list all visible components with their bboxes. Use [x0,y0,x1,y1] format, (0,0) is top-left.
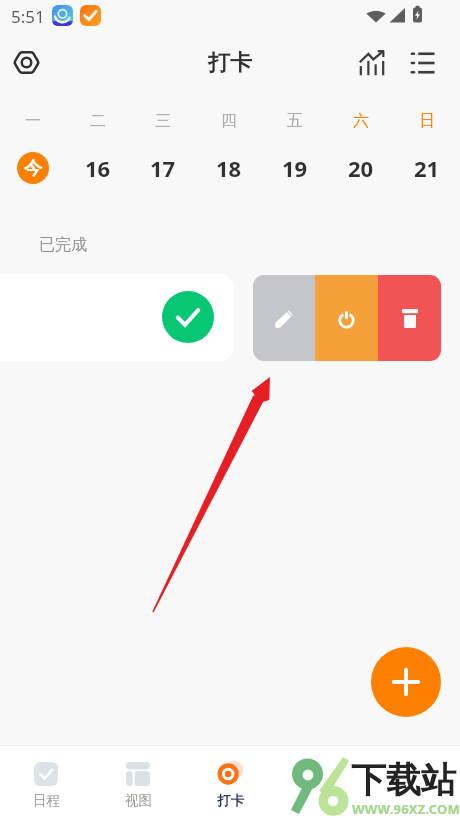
staticText: 三 [155,111,171,131]
staticText: 5:51 [11,5,45,28]
button[interactable]: Pause [315,275,378,361]
staticText: 四 [221,111,237,131]
button[interactable]: Delete [378,275,441,361]
button[interactable]: 21 [410,151,444,185]
staticText: WWW.96XZ.COM [352,800,460,818]
staticText: 17 [150,153,176,183]
button[interactable]: Add [371,647,441,717]
button[interactable]: Completed [162,291,214,343]
button[interactable]: Settings [4,35,48,90]
staticText: 六 [353,111,369,131]
button[interactable]: 日程 [0,761,92,818]
staticText: 日 [419,111,435,131]
button[interactable]: 18 [212,151,246,185]
staticText: 视图 [125,792,152,809]
button[interactable]: 19 [278,151,312,185]
staticText: 下载站 [351,758,456,802]
staticText: 20 [348,153,374,183]
staticText: 五 [287,111,303,131]
button[interactable]: List [399,35,447,90]
staticText: 一 [25,111,41,131]
button[interactable]: 16 [81,151,115,185]
button[interactable]: 17 [146,151,180,185]
staticText: 已完成 [39,235,87,255]
staticText: 日程 [33,792,60,809]
staticText: 19 [282,153,308,183]
button[interactable]: Statistics [348,35,396,90]
button[interactable]: Completed [0,274,234,361]
button[interactable]: 打卡 [184,761,276,818]
button[interactable]: 今 [17,152,49,184]
button[interactable]: 视图 [92,761,184,818]
staticText: 打卡 [217,792,244,809]
button[interactable]: 20 [344,151,378,185]
staticText: 二 [90,111,106,131]
staticText: 16 [85,153,111,183]
button[interactable]: Edit [253,275,315,361]
staticText: 打卡 [208,49,252,77]
staticText: 18 [216,153,242,183]
staticText: 今 [24,157,42,180]
staticText: 21 [414,153,440,183]
